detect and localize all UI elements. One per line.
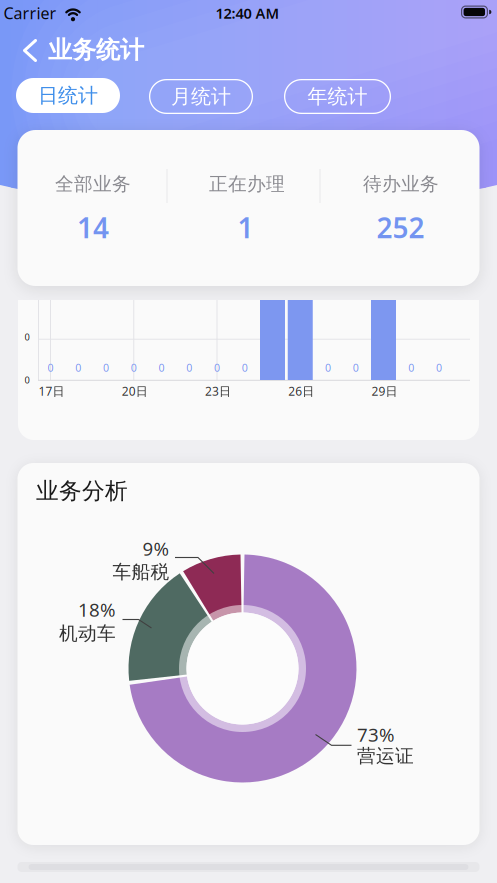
staticText: Carrier xyxy=(3,2,56,24)
staticText: 年统计 xyxy=(307,84,367,109)
staticText: 1 xyxy=(237,209,253,246)
staticText: 29日 xyxy=(371,383,397,399)
staticText: 0 xyxy=(47,360,53,375)
staticText: 0 xyxy=(436,360,442,375)
staticText: 业务分析 xyxy=(36,477,128,505)
staticText: 0 xyxy=(103,360,109,375)
staticText: 17日 xyxy=(38,383,64,399)
staticText: 车船税 xyxy=(112,560,169,583)
staticText: 0 xyxy=(75,360,81,375)
button[interactable] xyxy=(8,29,52,71)
staticText: 12:40 AM xyxy=(215,3,279,23)
button[interactable]: 日统计 xyxy=(16,78,120,113)
staticText: 252 xyxy=(376,209,424,246)
staticText: 机动车 xyxy=(59,622,116,645)
staticText: 0 xyxy=(408,360,414,375)
staticText: 14 xyxy=(77,209,109,246)
staticText: 全部业务 xyxy=(55,172,131,195)
button[interactable]: 月统计 xyxy=(149,79,253,114)
staticText: 业务统计 xyxy=(48,35,144,65)
staticText: 0 xyxy=(242,360,248,375)
button[interactable]: 年统计 xyxy=(284,79,391,114)
staticText: 18% xyxy=(78,597,116,622)
staticText: 0 xyxy=(214,360,220,375)
staticText: 73% xyxy=(357,722,395,747)
staticText: 营运证 xyxy=(357,744,414,767)
staticText: 日统计 xyxy=(38,83,98,108)
staticText: 0 xyxy=(186,360,192,375)
staticText: 0 xyxy=(24,374,29,386)
staticText: 0 xyxy=(158,360,164,375)
staticText: 0 xyxy=(24,331,29,343)
staticText: 9% xyxy=(142,536,169,561)
staticText: 23日 xyxy=(205,383,231,399)
staticText: 0 xyxy=(325,360,331,375)
staticText: 26日 xyxy=(288,383,314,399)
staticText: 月统计 xyxy=(171,84,231,109)
staticText: 正在办理 xyxy=(209,172,285,195)
staticText: 0 xyxy=(353,360,359,375)
staticText: 20日 xyxy=(122,383,148,399)
staticText: 0 xyxy=(131,360,137,375)
staticText: 待办业务 xyxy=(363,172,439,195)
